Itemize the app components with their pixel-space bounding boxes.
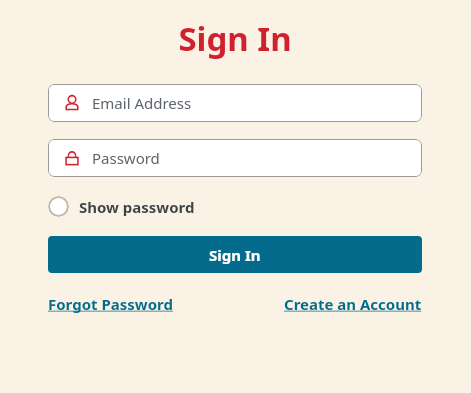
staticText: Email Address	[92, 93, 192, 113]
staticText: Sign In	[178, 16, 292, 61]
button[interactable]: Forgot Password	[48, 291, 173, 317]
button[interactable]: Create an Account	[284, 291, 422, 317]
button[interactable]: Email Address	[48, 84, 422, 122]
staticText: Sign In	[209, 245, 261, 265]
staticText: Password	[92, 148, 160, 168]
button[interactable]: Sign In	[48, 236, 422, 273]
button[interactable]: Password	[48, 139, 422, 177]
staticText: Forgot Password	[48, 294, 173, 314]
staticText: Show password	[79, 197, 195, 217]
button[interactable]: Show password	[48, 194, 195, 219]
staticText: Create an Account	[284, 294, 422, 314]
